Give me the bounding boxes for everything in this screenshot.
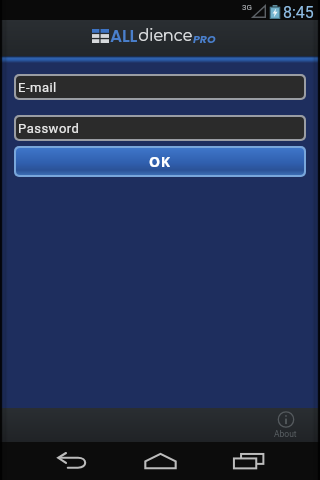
- button[interactable]: Recent apps: [204, 442, 292, 480]
- staticText: dience: [138, 27, 193, 45]
- button[interactable]: E-mail: [16, 76, 304, 98]
- staticText: ALL: [110, 24, 138, 48]
- button[interactable]: About: [274, 411, 297, 439]
- button[interactable]: OK: [16, 148, 304, 175]
- staticText: Password: [18, 121, 80, 136]
- staticText: About: [274, 429, 297, 439]
- staticText: E-mail: [18, 80, 57, 95]
- button[interactable]: Password: [16, 117, 304, 139]
- staticText: PRO: [193, 31, 216, 46]
- staticText: OK: [149, 152, 171, 171]
- staticText: 3G: [242, 3, 252, 12]
- button[interactable]: Home: [116, 442, 204, 480]
- staticText: 8:45: [283, 3, 314, 22]
- button[interactable]: Back: [27, 442, 116, 480]
